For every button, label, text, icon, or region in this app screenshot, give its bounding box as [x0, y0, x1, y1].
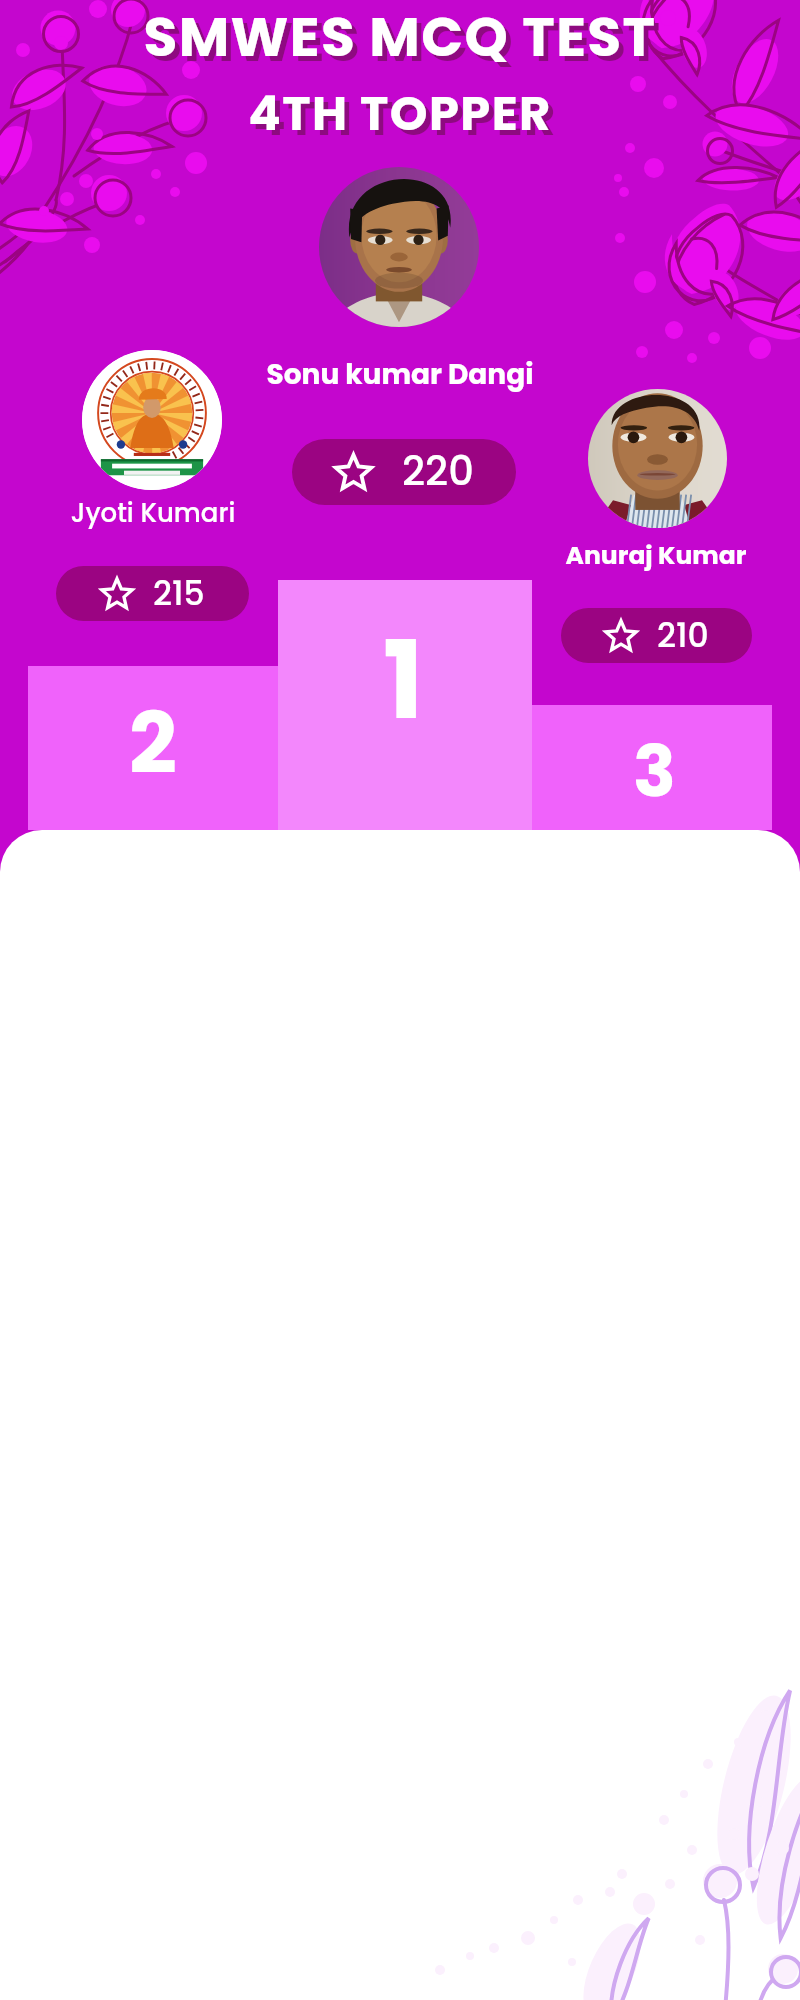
button[interactable]: 215	[56, 566, 249, 621]
staticText: Jyoti Kumari	[28, 495, 278, 531]
button[interactable]: Sonu kumar Dangi photo	[319, 167, 479, 327]
staticText: 215	[153, 570, 205, 616]
staticText: SMWES MCQ TEST	[0, 0, 800, 75]
button[interactable]: Anuraj Kumar photo	[588, 389, 727, 528]
button[interactable]: 1	[278, 580, 532, 830]
staticText: 4TH TOPPER	[5, 85, 800, 152]
button[interactable]: 220	[292, 439, 516, 505]
staticText: 220	[402, 443, 474, 499]
staticText: SMWES MCQ TEST	[5, 3, 800, 80]
button[interactable]: Jyoti Kumari photo	[82, 350, 222, 490]
staticText: 1	[383, 605, 424, 756]
staticText: 4TH TOPPER	[0, 80, 800, 147]
staticText: Sonu kumar Dangi	[0, 355, 800, 394]
button[interactable]: 210	[561, 608, 752, 663]
staticText: 2	[129, 685, 177, 803]
staticText: 3	[633, 721, 676, 820]
staticText: Anuraj Kumar	[532, 538, 780, 573]
button[interactable]: 3	[532, 705, 772, 830]
button[interactable]: 2	[28, 666, 278, 830]
staticText: 210	[657, 612, 709, 658]
